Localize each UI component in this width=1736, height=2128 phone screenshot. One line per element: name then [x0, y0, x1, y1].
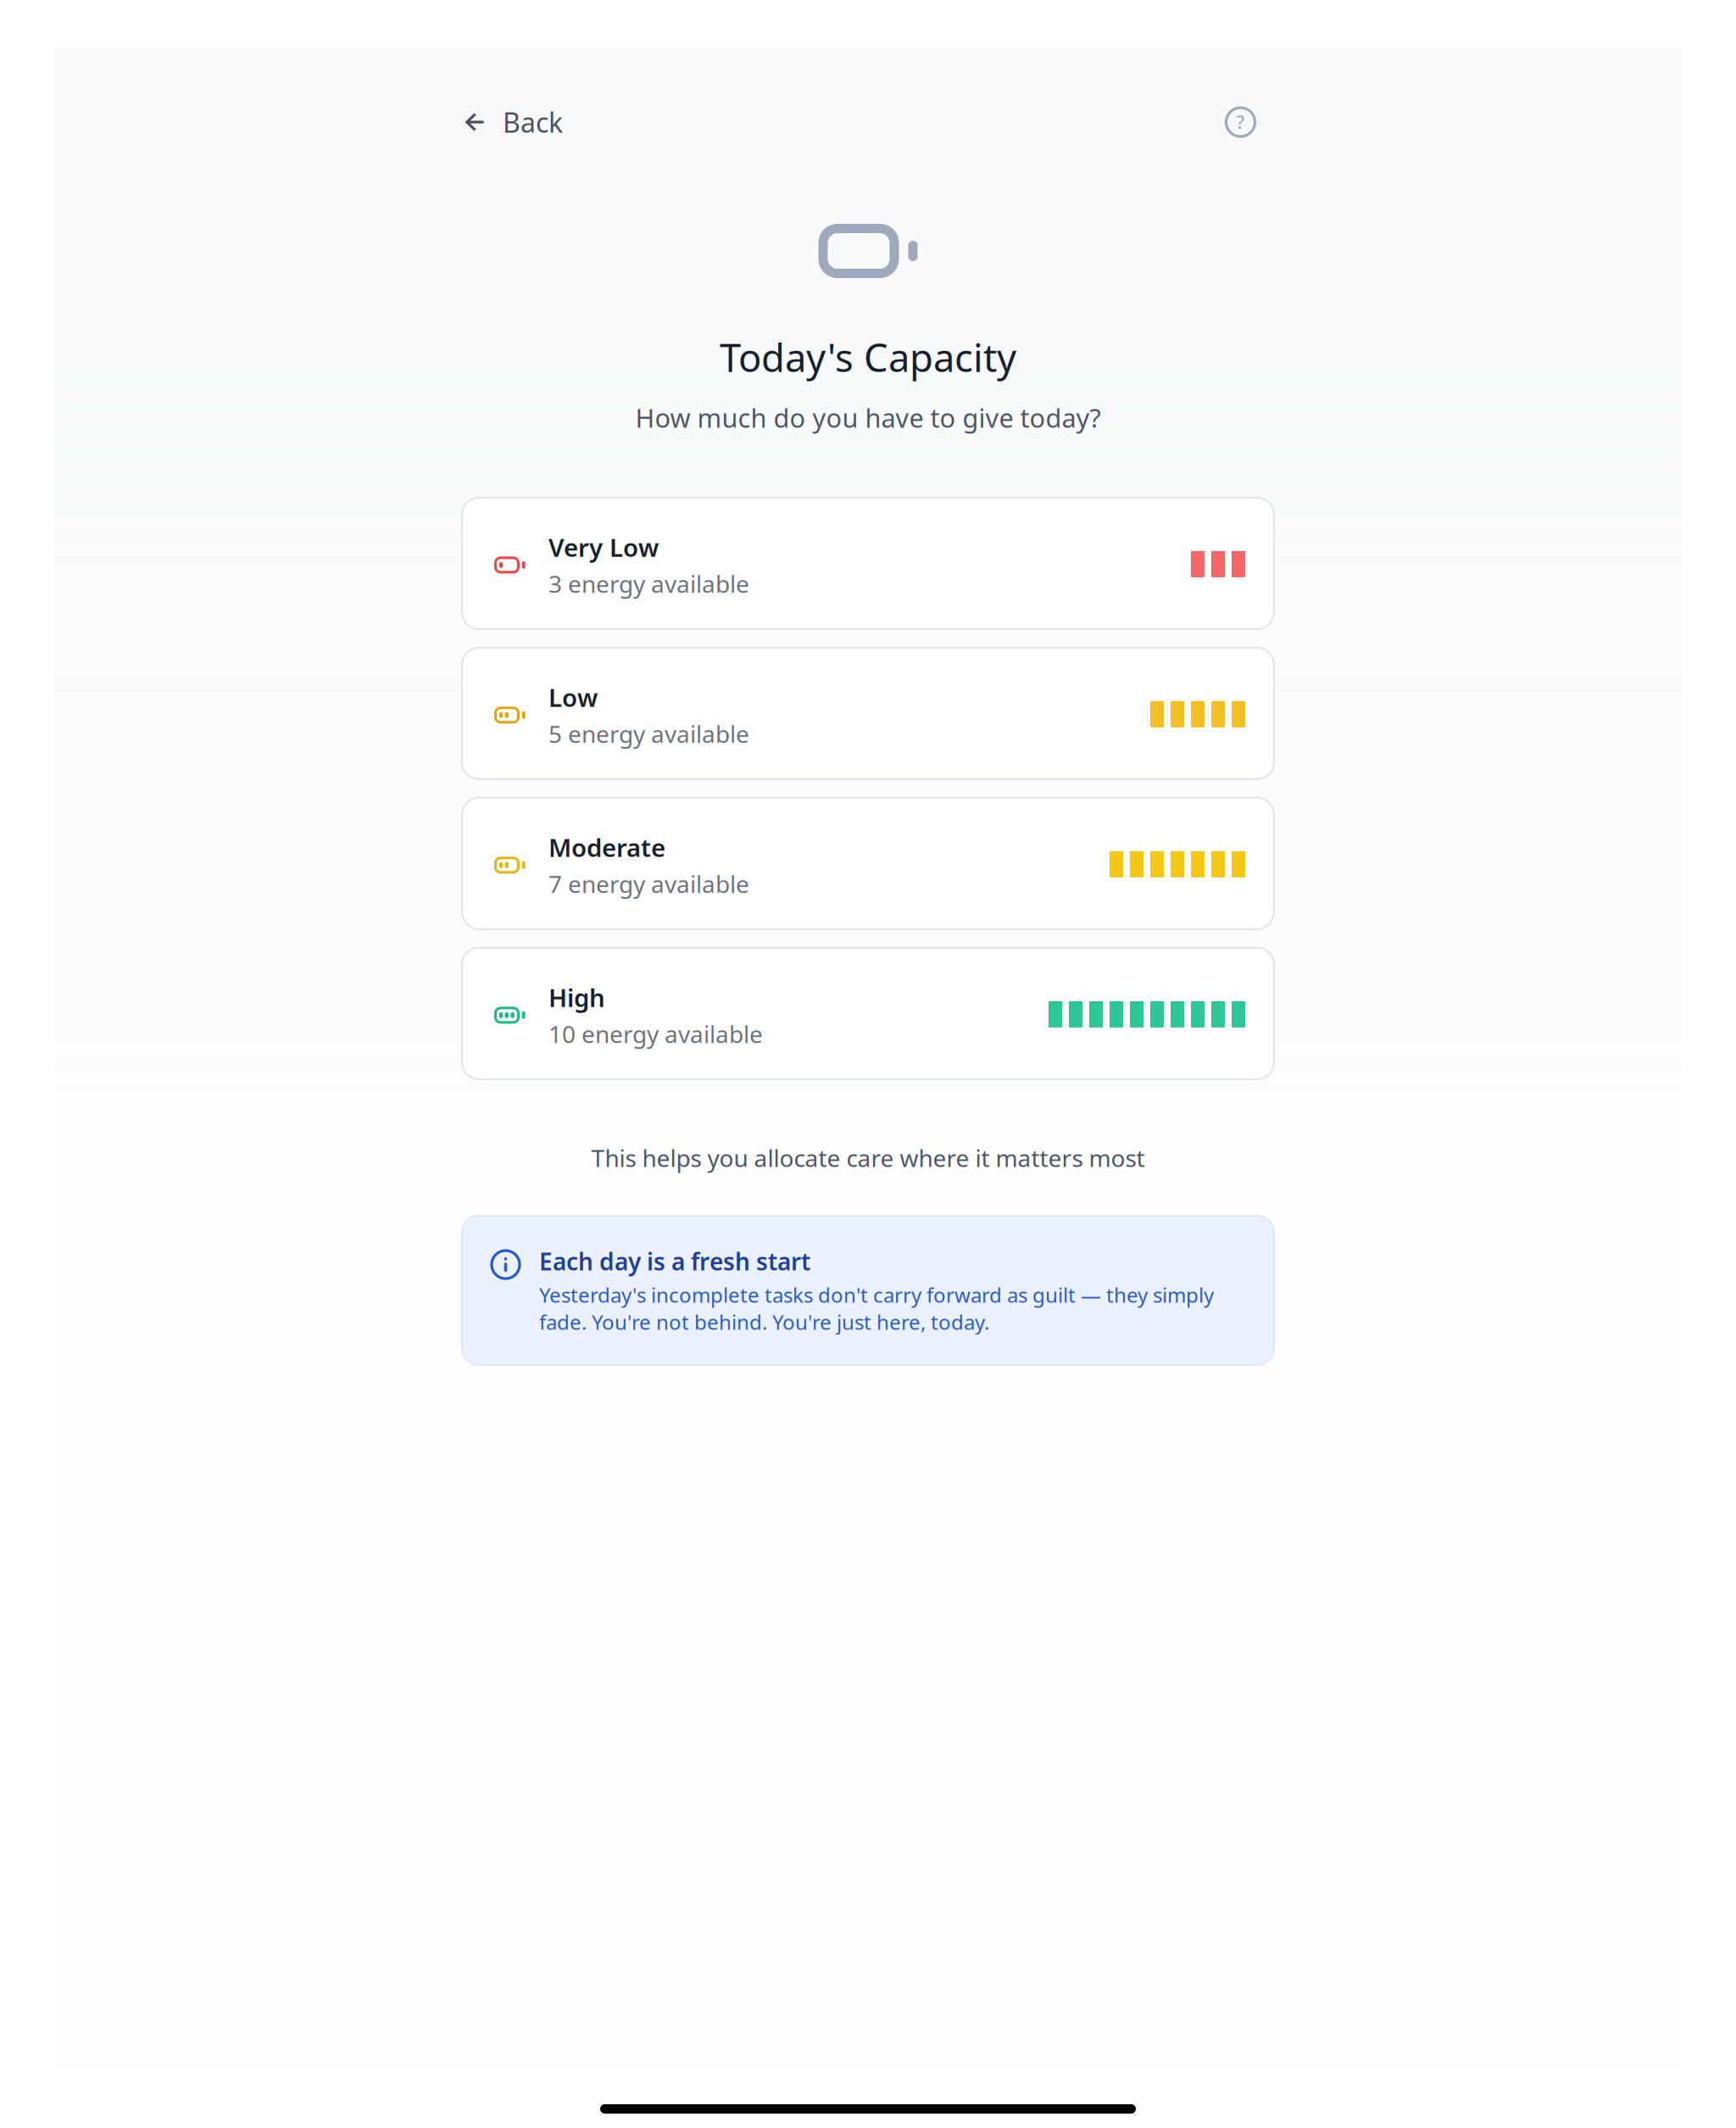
staticText: Today's Capacity — [720, 331, 1016, 383]
staticText: How much do you have to give today? — [635, 400, 1101, 435]
staticText: Low — [548, 681, 598, 714]
staticText: 5 energy available — [548, 718, 749, 749]
button[interactable]: Low — [462, 648, 1274, 779]
staticText: Very Low — [548, 531, 659, 564]
staticText: 7 energy available — [548, 868, 749, 900]
staticText: ? — [1236, 110, 1245, 134]
staticText: 10 energy available — [548, 1018, 763, 1050]
staticText: High — [548, 981, 605, 1014]
button[interactable]: Help — [1221, 103, 1260, 141]
button[interactable]: Back — [465, 94, 563, 150]
button[interactable]: Moderate — [462, 798, 1274, 929]
staticText: Moderate — [548, 831, 665, 864]
staticText: 3 energy available — [548, 568, 749, 599]
staticText: Each day is a fresh start — [539, 1246, 810, 1277]
button[interactable]: High — [462, 948, 1274, 1079]
staticText: Yesterday's incomplete tasks don't carry… — [539, 1281, 1214, 1335]
staticText: This helps you allocate care where it ma… — [591, 1142, 1145, 1173]
button[interactable]: Very Low — [462, 498, 1274, 629]
staticText: Back — [503, 104, 563, 140]
